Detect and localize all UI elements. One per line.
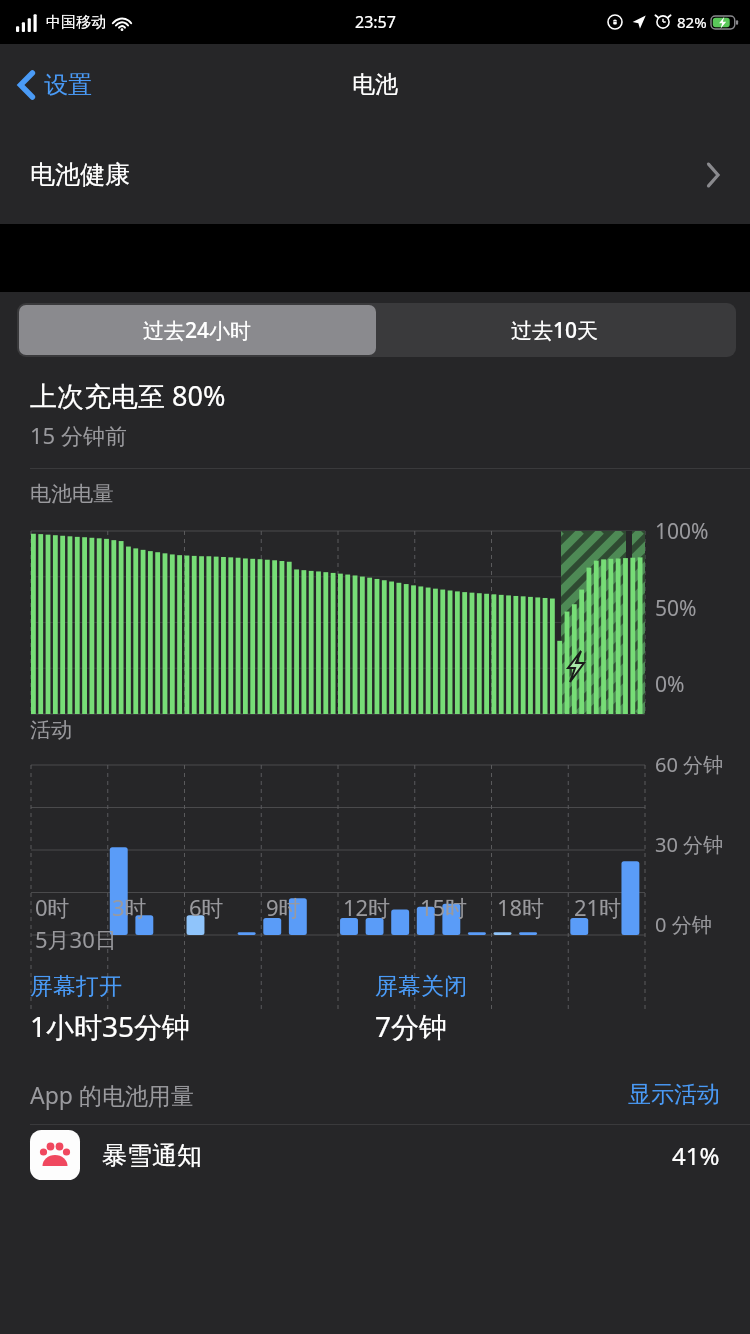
staticText: 设置 bbox=[44, 70, 92, 100]
staticText: 18时 bbox=[497, 892, 545, 922]
staticText: 41% bbox=[672, 1139, 720, 1172]
staticText: 电池电量 bbox=[30, 481, 114, 507]
staticText: 0% bbox=[655, 670, 685, 699]
staticText: 电池 bbox=[352, 70, 398, 99]
staticText: 82% bbox=[677, 12, 707, 32]
button[interactable]: 过去10天 bbox=[376, 305, 734, 355]
staticText: 9时 bbox=[266, 892, 301, 922]
button[interactable]: 暴雪通知 bbox=[0, 1125, 750, 1185]
staticText: 过去10天 bbox=[511, 316, 599, 345]
staticText: 中国移动 bbox=[46, 13, 106, 32]
staticText: 1小时35分钟 bbox=[30, 1007, 191, 1045]
staticText: 活动 bbox=[30, 717, 72, 743]
staticText: 屏幕打开 bbox=[30, 972, 122, 1001]
staticText: 12时 bbox=[343, 892, 391, 922]
staticText: 上次充电至 80% bbox=[30, 377, 226, 414]
staticText: 3时 bbox=[112, 892, 147, 922]
staticText: 电池健康 bbox=[30, 159, 130, 190]
staticText: 7分钟 bbox=[375, 1007, 448, 1045]
button[interactable]: 过去24小时 bbox=[19, 305, 376, 355]
button[interactable]: 设置 bbox=[12, 64, 98, 106]
staticText: 15时 bbox=[420, 892, 468, 922]
staticText: App 的电池用量 bbox=[30, 1079, 194, 1110]
staticText: 23:57 bbox=[355, 11, 396, 33]
button[interactable]: 显示活动 bbox=[628, 1080, 720, 1109]
staticText: 21时 bbox=[574, 892, 622, 922]
staticText: 100% bbox=[655, 517, 709, 546]
button[interactable]: 电池健康 bbox=[0, 125, 750, 224]
staticText: 0时 bbox=[35, 892, 70, 922]
staticText: 30 分钟 bbox=[655, 831, 724, 858]
staticText: 屏幕关闭 bbox=[375, 972, 467, 1001]
staticText: 15 分钟前 bbox=[30, 420, 127, 450]
staticText: 过去24小时 bbox=[143, 316, 252, 345]
staticText: 0 分钟 bbox=[655, 911, 712, 938]
staticText: 6时 bbox=[189, 892, 224, 922]
staticText: 50% bbox=[655, 594, 697, 623]
staticText: 显示活动 bbox=[628, 1080, 720, 1109]
staticText: 60 分钟 bbox=[655, 751, 724, 778]
staticText: 暴雪通知 bbox=[102, 1140, 202, 1171]
staticText: 5月30日 bbox=[35, 924, 117, 954]
